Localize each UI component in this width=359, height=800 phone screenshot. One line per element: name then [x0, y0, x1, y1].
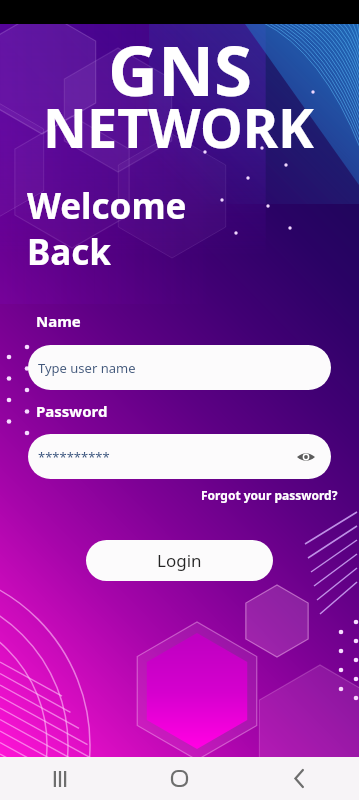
staticText: Welcome	[27, 182, 187, 230]
button[interactable]: Login	[86, 540, 273, 581]
staticText: Login	[157, 549, 202, 572]
button[interactable]: Home	[119, 757, 239, 800]
staticText: GNS	[108, 22, 253, 116]
button[interactable]: Back	[239, 757, 359, 800]
button[interactable]: **********	[28, 434, 331, 479]
button[interactable]: Show password	[291, 442, 321, 472]
staticText: Back	[27, 228, 112, 276]
staticText: NETWORK	[43, 90, 314, 164]
staticText: Password	[36, 401, 108, 421]
button[interactable]: Forgot your password?	[201, 487, 338, 503]
staticText: **********	[38, 448, 110, 466]
button[interactable]: Type user name	[28, 345, 331, 390]
staticText: Name	[36, 311, 81, 331]
staticText: Type user name	[38, 359, 136, 377]
button[interactable]: Recent apps	[0, 757, 119, 800]
